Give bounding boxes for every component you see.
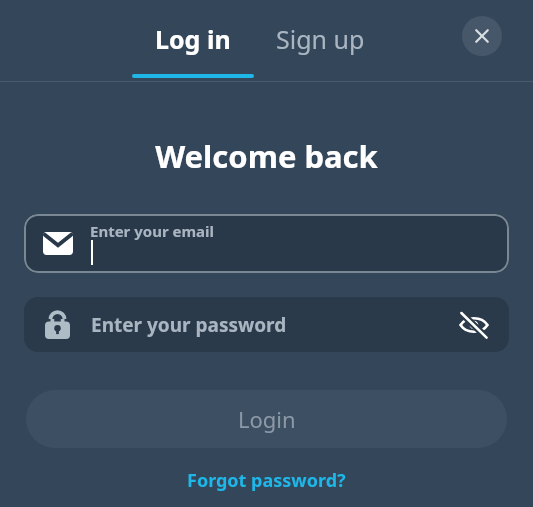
button[interactable]: Sign up	[276, 22, 365, 78]
button[interactable]: Forgot password?	[187, 468, 346, 493]
staticText: Log in	[155, 22, 231, 56]
button[interactable]: Enter your email	[24, 214, 509, 273]
button[interactable]: Enter your password	[24, 297, 509, 352]
staticText: Forgot password?	[187, 468, 346, 493]
button[interactable]: Close	[462, 16, 502, 56]
staticText: Sign up	[276, 22, 365, 56]
button[interactable]: Log in	[132, 22, 254, 78]
staticText: Welcome back	[0, 135, 533, 177]
button[interactable]: Login	[26, 390, 507, 448]
staticText: Enter your password	[91, 312, 287, 338]
staticText: Enter your email	[90, 221, 215, 241]
staticText: Login	[238, 404, 296, 434]
button[interactable]: Show password	[452, 303, 496, 347]
